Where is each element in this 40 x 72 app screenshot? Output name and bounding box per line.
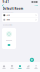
staticText: Lights xyxy=(6,14,10,16)
button[interactable]: Tab 4 xyxy=(24,62,32,72)
button[interactable]: Tab 3 xyxy=(16,62,24,72)
staticText: Default Room xyxy=(2,7,23,10)
button[interactable]: Tab 5 xyxy=(32,62,40,72)
staticText: Accessories xyxy=(2,24,12,26)
button[interactable]: Tab 1 xyxy=(0,62,8,72)
staticText: 9:41 xyxy=(2,0,9,4)
button[interactable]: Back xyxy=(2,4,4,7)
button[interactable]: More options xyxy=(35,4,38,7)
button[interactable]: Lights xyxy=(2,13,38,17)
button[interactable]: Climate xyxy=(2,18,38,22)
button[interactable]: Add accessory xyxy=(30,58,34,62)
button[interactable] xyxy=(2,28,16,49)
staticText: 3 accessories xyxy=(2,11,13,13)
button[interactable]: Tab 2 xyxy=(8,62,16,72)
staticText: Climate xyxy=(6,19,10,21)
